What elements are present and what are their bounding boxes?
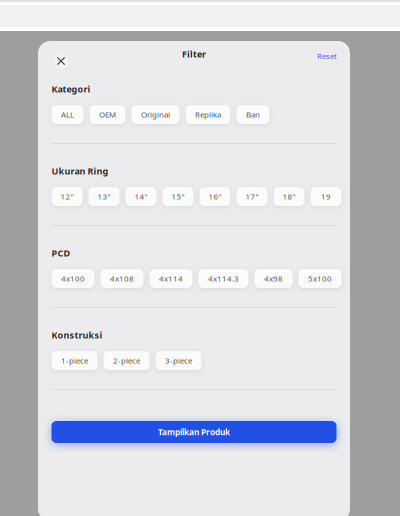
staticText: Ban (246, 109, 260, 120)
staticText: Konstruksi (51, 329, 102, 341)
button[interactable]: 3-piece (155, 351, 201, 370)
staticText: 14" (134, 191, 147, 202)
staticText: 19 (321, 191, 331, 202)
staticText: PCD (51, 247, 70, 259)
staticText: 4x108 (110, 273, 134, 284)
button[interactable]: 19 (310, 187, 341, 206)
button[interactable]: 4x114.3 (198, 269, 248, 288)
staticText: 4x98 (264, 273, 283, 284)
button[interactable]: 1-piece (51, 351, 97, 370)
staticText: Filter (182, 48, 206, 60)
staticText: 4x100 (61, 273, 85, 284)
button[interactable]: 14" (125, 187, 156, 206)
button[interactable]: 18" (273, 187, 304, 206)
button[interactable]: 4x108 (100, 269, 143, 288)
staticText: 16" (208, 191, 221, 202)
button[interactable]: Replika (185, 105, 230, 124)
staticText: 1-piece (61, 355, 88, 366)
button[interactable]: 4x114 (149, 269, 192, 288)
button[interactable]: 4x98 (254, 269, 292, 288)
staticText: Tampilkan Produk (158, 426, 230, 438)
button[interactable]: 5x100 (298, 269, 341, 288)
button[interactable]: 16" (199, 187, 230, 206)
button[interactable]: 4x100 (51, 269, 94, 288)
staticText: 12" (60, 191, 73, 202)
button[interactable]: Close (50, 50, 72, 72)
staticText: 17" (245, 191, 258, 202)
staticText: 15" (171, 191, 184, 202)
staticText: ALL (61, 109, 74, 120)
button[interactable]: Tampilkan Produk (51, 421, 336, 443)
staticText: 18" (282, 191, 295, 202)
staticText: OEM (99, 109, 116, 120)
staticText: 2-piece (113, 355, 140, 366)
staticText: 3-piece (165, 355, 192, 366)
staticText: 4x114.3 (208, 273, 239, 284)
staticText: Original (141, 109, 170, 120)
staticText: Ukuran Ring (51, 165, 108, 177)
button[interactable]: 13" (88, 187, 119, 206)
button[interactable]: 12" (51, 187, 82, 206)
staticText: Kategori (51, 83, 90, 95)
staticText: 5x100 (308, 273, 332, 284)
staticText: Reset (317, 51, 337, 61)
staticText: 13" (97, 191, 110, 202)
button[interactable]: OEM (89, 105, 125, 124)
button[interactable]: Ban (236, 105, 269, 124)
button[interactable]: 2-piece (103, 351, 149, 370)
button[interactable]: 17" (236, 187, 267, 206)
staticText: 4x114 (159, 273, 183, 284)
staticText: Replika (195, 109, 221, 120)
button[interactable]: 15" (162, 187, 193, 206)
button[interactable]: ALL (51, 105, 83, 124)
button[interactable]: Original (131, 105, 179, 124)
button[interactable]: Reset (313, 46, 341, 66)
